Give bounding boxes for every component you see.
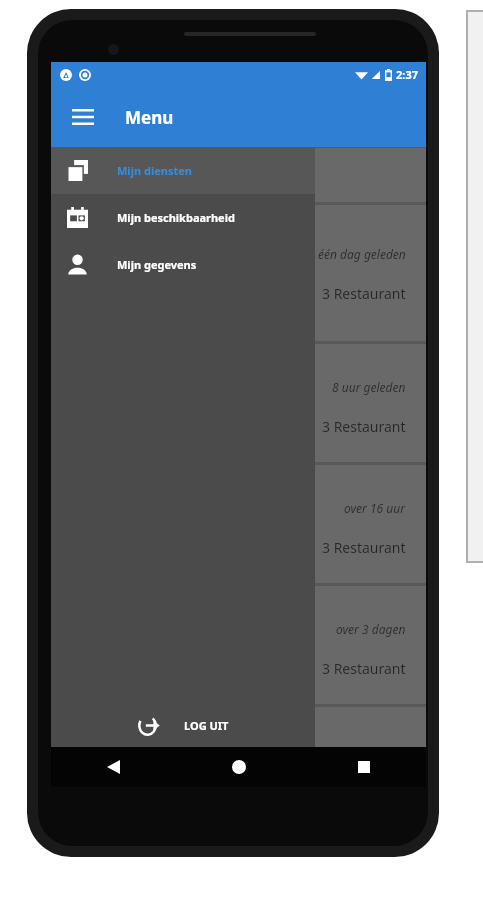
button[interactable]: Mijn diensten bbox=[51, 147, 315, 194]
staticText: Mijn diensten bbox=[117, 163, 192, 178]
staticText: 3 Restaurant bbox=[322, 417, 406, 436]
staticText: Menu bbox=[125, 106, 174, 129]
button[interactable]: 8 uur geleden bbox=[51, 344, 426, 462]
button[interactable]: Open navigation menu bbox=[60, 94, 106, 140]
button[interactable]: Back bbox=[51, 747, 176, 787]
staticText: over 16 uur bbox=[344, 500, 406, 516]
button[interactable] bbox=[51, 148, 426, 202]
staticText: 3 Restaurant bbox=[322, 538, 406, 557]
button[interactable]: Mijn gegevens bbox=[51, 241, 315, 288]
staticText: één dag geleden bbox=[318, 246, 406, 262]
button[interactable]: over 6 dagen bbox=[51, 707, 426, 787]
button[interactable]: Recent apps bbox=[301, 747, 426, 787]
staticText: Mijn gegevens bbox=[117, 257, 197, 272]
staticText: 2:37 bbox=[396, 67, 418, 82]
staticText: LOG UIT bbox=[184, 718, 229, 733]
button[interactable]: over 16 uur bbox=[51, 465, 426, 583]
staticText: 3 Restaurant bbox=[322, 659, 406, 678]
button[interactable]: LOG UIT bbox=[51, 697, 315, 753]
button[interactable]: Home bbox=[176, 747, 301, 787]
staticText: over 6 dagen bbox=[336, 755, 406, 771]
staticText: 3 Restaurant bbox=[322, 284, 406, 303]
staticText: Mijn beschikbaarheid bbox=[117, 210, 235, 225]
staticText: over 3 dagen bbox=[336, 621, 406, 637]
staticText: 8 uur geleden bbox=[332, 379, 406, 395]
button[interactable]: Mijn beschikbaarheid bbox=[51, 194, 315, 241]
button[interactable]: over 3 dagen bbox=[51, 586, 426, 704]
button[interactable]: één dag geleden bbox=[51, 205, 426, 341]
